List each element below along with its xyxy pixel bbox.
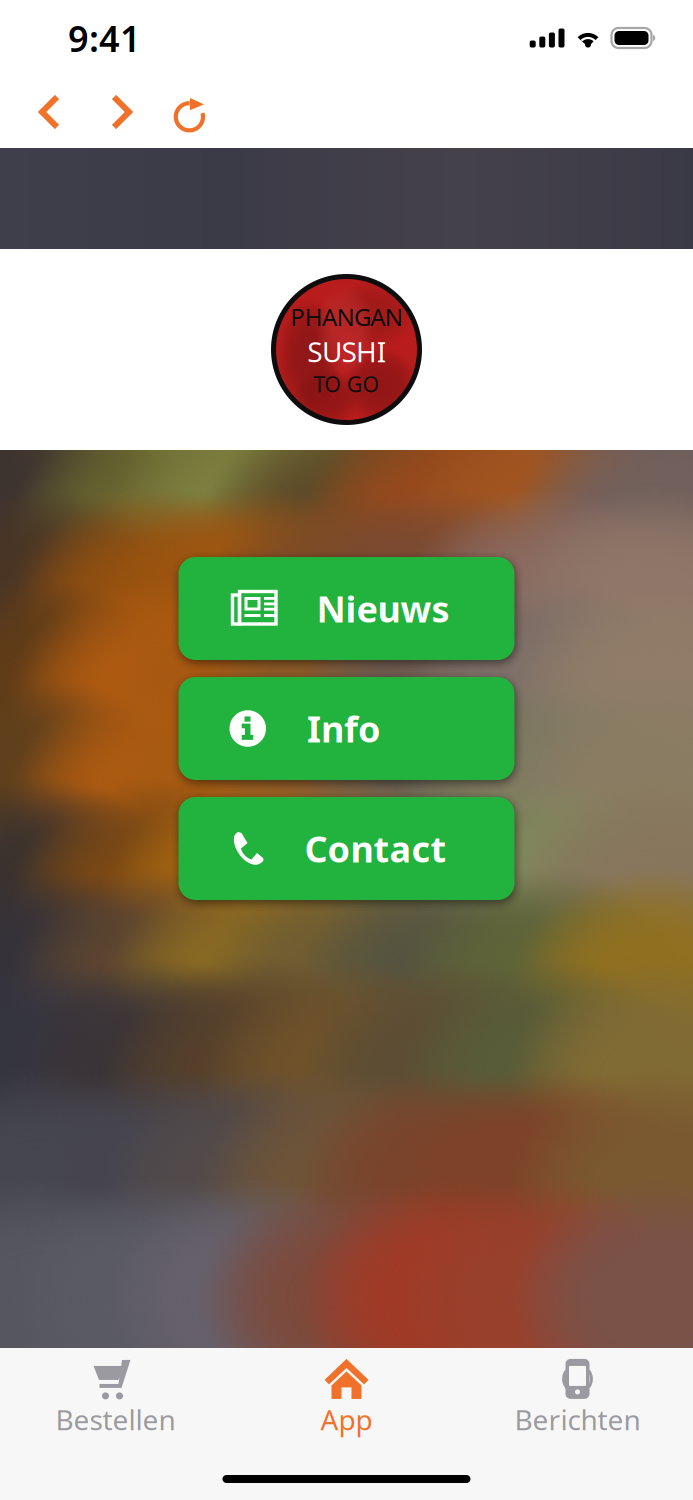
staticText: TO GO <box>313 370 380 398</box>
button[interactable]: App <box>231 1354 462 1442</box>
button[interactable]: Info <box>178 677 514 780</box>
button[interactable]: Berichten <box>462 1354 693 1442</box>
staticText: Nieuws <box>316 585 449 632</box>
staticText: Info <box>307 705 381 752</box>
button[interactable]: Forward <box>99 76 144 148</box>
button[interactable]: Nieuws <box>178 557 514 660</box>
staticText: 9:41 <box>68 14 141 62</box>
staticText: Contact <box>304 825 446 872</box>
staticText: SUSHI <box>307 333 386 370</box>
staticText: Bestellen <box>55 1401 175 1438</box>
button[interactable]: Bestellen <box>0 1354 231 1442</box>
button[interactable]: Reload <box>144 76 236 148</box>
button[interactable]: Back <box>0 76 99 148</box>
button[interactable]: Contact <box>178 797 514 900</box>
staticText: PHANGAN <box>290 301 403 333</box>
staticText: Berichten <box>514 1401 640 1438</box>
staticText: App <box>320 1401 372 1438</box>
